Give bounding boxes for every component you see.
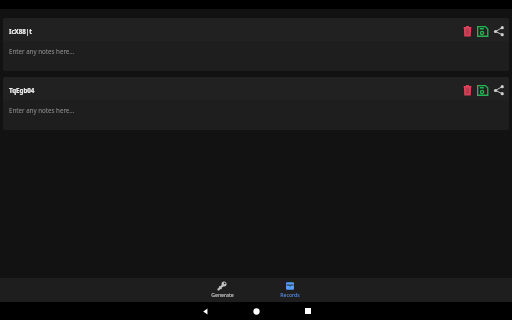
- button[interactable]: Home: [231, 302, 282, 320]
- staticText: Enter any notes here...: [9, 47, 75, 55]
- button[interactable]: Save: [475, 23, 490, 38]
- button[interactable]: Back: [180, 302, 231, 320]
- staticText: IcX88|t: [9, 27, 32, 35]
- button[interactable]: Recents: [282, 302, 333, 320]
- button[interactable]: Share: [490, 82, 505, 97]
- button[interactable]: Records: [270, 281, 310, 298]
- staticText: Enter any notes here...: [9, 106, 75, 114]
- button[interactable]: Save: [475, 82, 490, 97]
- button[interactable]: Delete: [460, 82, 475, 97]
- button[interactable]: TqEgb04: [3, 77, 509, 130]
- button[interactable]: IcX88|t: [3, 18, 509, 71]
- staticText: Records: [280, 291, 300, 298]
- button[interactable]: Generate: [202, 281, 242, 298]
- staticText: TqEgb04: [9, 86, 35, 94]
- button[interactable]: Delete: [460, 23, 475, 38]
- button[interactable]: Share: [490, 23, 505, 38]
- staticText: Generate: [211, 291, 234, 298]
